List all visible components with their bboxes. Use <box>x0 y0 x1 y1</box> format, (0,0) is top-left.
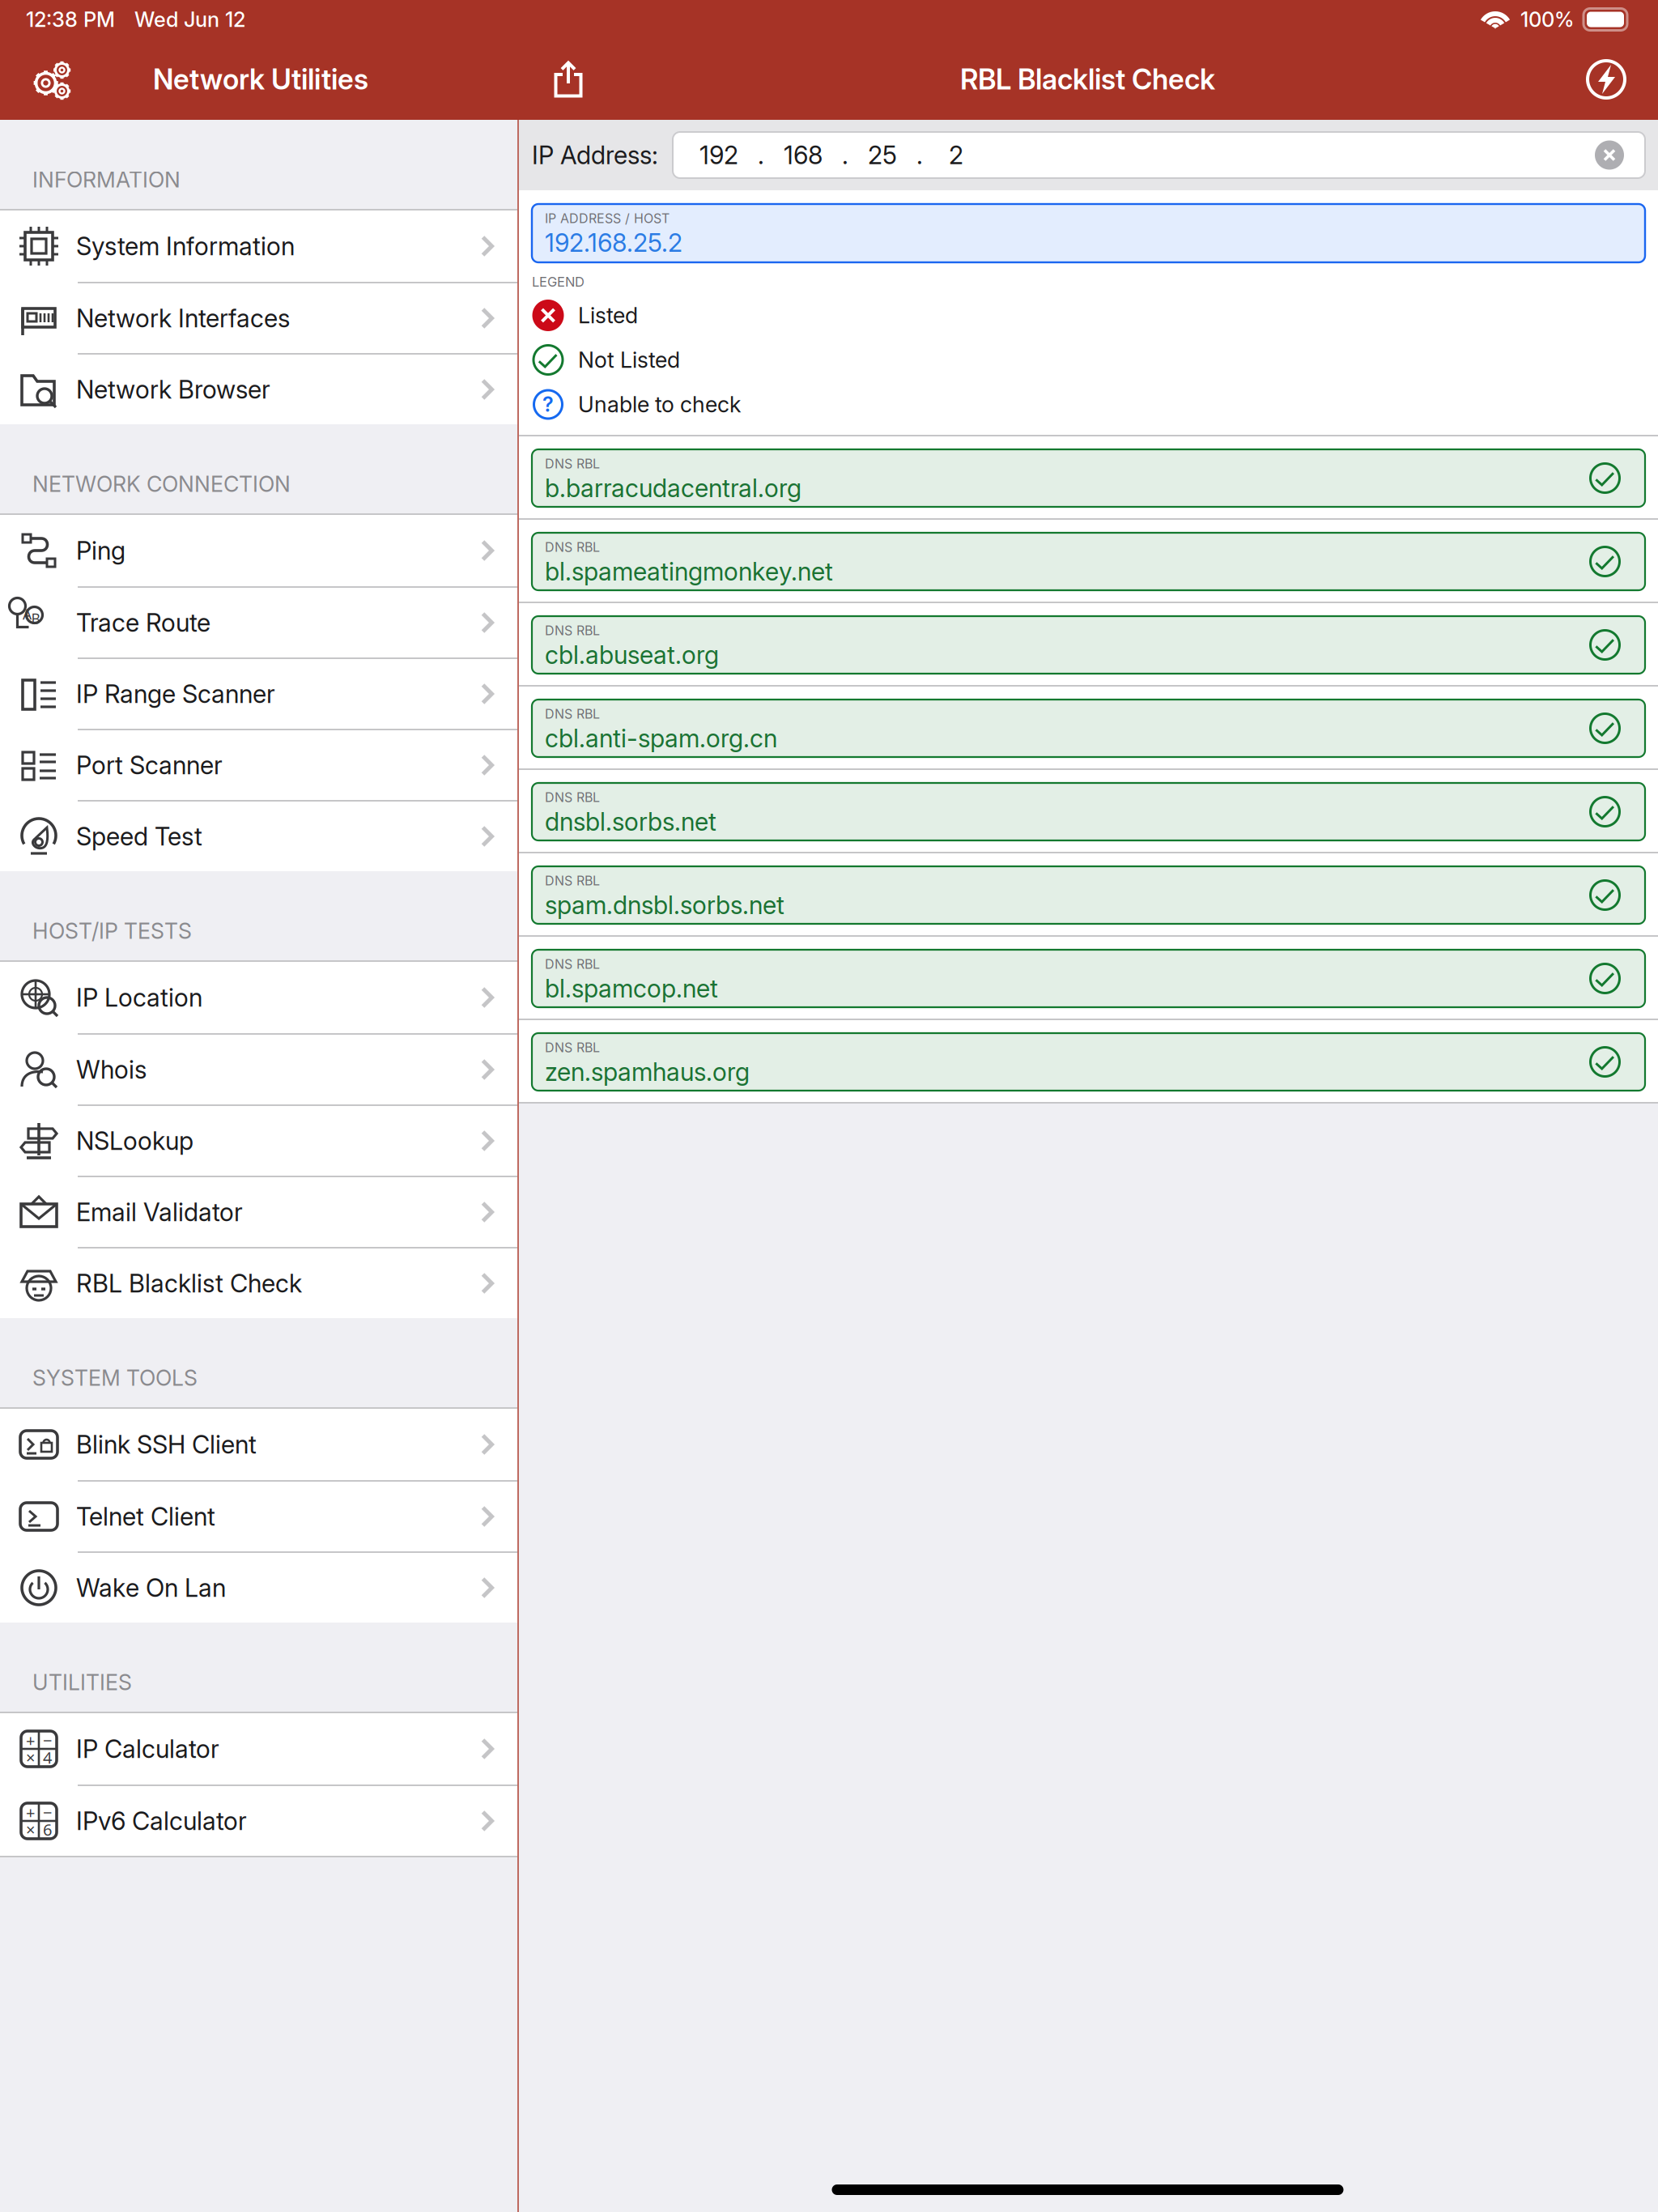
staticText: dnsbl.sorbs.net <box>545 807 716 837</box>
button[interactable]: DNS RBL <box>519 853 1658 937</box>
staticText: RBL Blacklist Check <box>960 62 1215 96</box>
staticText: NETWORK CONNECTION <box>32 471 291 497</box>
staticText: IP Range Scanner <box>76 679 275 709</box>
button[interactable]: Whois <box>0 1033 517 1104</box>
staticText: DNS RBL <box>545 456 600 472</box>
staticText: 192.168.25.2 <box>545 228 682 258</box>
staticText: Trace Route <box>76 608 210 638</box>
staticText: IP Location <box>76 982 202 1012</box>
staticText: Listed <box>578 302 638 329</box>
staticText: Unable to check <box>578 391 741 418</box>
button[interactable]: Blink SSH Client <box>0 1409 517 1480</box>
staticText: UTILITIES <box>32 1669 132 1695</box>
staticText: SYSTEM TOOLS <box>32 1365 198 1391</box>
staticText: bl.spamcop.net <box>545 974 718 1004</box>
staticText: B <box>31 609 40 628</box>
button[interactable]: RBL Blacklist Check <box>0 1247 517 1318</box>
staticText: spam.dnsbl.sorbs.net <box>545 890 784 920</box>
staticText: NSLookup <box>76 1126 193 1156</box>
staticText: × <box>26 1747 35 1768</box>
staticText: DNS RBL <box>545 1040 600 1055</box>
button[interactable]: Port Scanner <box>0 729 517 800</box>
button[interactable]: IP Location <box>0 962 517 1033</box>
staticText: − <box>43 1730 52 1751</box>
staticText: Blink SSH Client <box>76 1429 257 1459</box>
staticText: ? <box>542 392 554 417</box>
staticText: IPv6 Calculator <box>76 1806 247 1836</box>
staticText: LEGEND <box>532 274 585 290</box>
button[interactable]: Telnet Client <box>0 1480 517 1551</box>
staticText: Network Interfaces <box>76 303 290 333</box>
staticText: − <box>43 1802 52 1823</box>
staticText: Wake On Lan <box>76 1573 226 1603</box>
button[interactable]: Network Browser <box>0 353 517 424</box>
button[interactable]: DNS RBL <box>519 770 1658 853</box>
staticText: Ping <box>76 536 125 566</box>
button[interactable]: Speed Test <box>0 800 517 871</box>
staticText: + <box>26 1730 35 1751</box>
staticText: 12:38 PM <box>26 7 115 32</box>
staticText: RBL Blacklist Check <box>76 1268 302 1298</box>
staticText: DNS RBL <box>545 873 600 889</box>
button[interactable]: Network Interfaces <box>0 282 517 353</box>
staticText: cbl.anti-spam.org.cn <box>545 723 777 753</box>
button[interactable]: + <box>0 1713 517 1784</box>
staticText: Not Listed <box>578 347 680 373</box>
staticText: zen.spamhaus.org <box>545 1057 750 1087</box>
staticText: Speed Test <box>76 821 202 851</box>
staticText: System Information <box>76 231 295 261</box>
button[interactable]: A <box>0 586 517 657</box>
button[interactable]: IP Range Scanner <box>0 657 517 729</box>
staticText: A <box>23 605 32 623</box>
staticText: Network Utilities <box>153 62 368 96</box>
staticText: DNS RBL <box>545 623 600 638</box>
button[interactable]: Share <box>517 39 619 120</box>
button[interactable]: DNS RBL <box>519 1020 1658 1104</box>
staticText: DNS RBL <box>545 956 600 972</box>
staticText: Whois <box>76 1055 147 1085</box>
button[interactable]: Run check <box>1554 39 1658 120</box>
staticText: 192 . 168 . 25 . 2 <box>699 140 963 170</box>
button[interactable]: Email Validator <box>0 1176 517 1247</box>
staticText: + <box>26 1802 35 1823</box>
button[interactable]: DNS RBL <box>519 937 1658 1020</box>
staticText: Telnet Client <box>76 1501 215 1531</box>
button[interactable]: DNS RBL <box>519 436 1658 520</box>
button[interactable]: Clear <box>1595 140 1645 170</box>
staticText: Wed Jun 12 <box>134 7 245 32</box>
button[interactable]: DNS RBL <box>519 520 1658 603</box>
staticText: IP Address: <box>532 140 658 170</box>
staticText: × <box>26 1819 35 1840</box>
button[interactable]: DNS RBL <box>519 603 1658 687</box>
button[interactable]: Settings <box>0 39 102 120</box>
staticText: bl.spameatingmonkey.net <box>545 557 833 587</box>
staticText: INFORMATION <box>32 167 181 193</box>
staticText: cbl.abuseat.org <box>545 640 719 670</box>
staticText: Email Validator <box>76 1197 243 1227</box>
button[interactable]: Ping <box>0 515 517 586</box>
staticText: DNS RBL <box>545 789 600 805</box>
button[interactable]: System Information <box>0 211 517 282</box>
button[interactable]: Wake On Lan <box>0 1551 517 1623</box>
staticText: HOST/IP TESTS <box>32 918 192 944</box>
staticText: DNS RBL <box>545 539 600 555</box>
staticText: 4 <box>43 1747 52 1768</box>
staticText: IP Calculator <box>76 1734 219 1764</box>
staticText: DNS RBL <box>545 706 600 722</box>
staticText: 100% <box>1520 7 1574 32</box>
button[interactable]: + <box>0 1784 517 1856</box>
staticText: 6 <box>43 1819 52 1840</box>
button[interactable]: NSLookup <box>0 1104 517 1176</box>
staticText: Port Scanner <box>76 750 223 780</box>
staticText: Network Browser <box>76 374 270 404</box>
button[interactable]: DNS RBL <box>519 687 1658 770</box>
staticText: IP ADDRESS / HOST <box>545 211 670 226</box>
staticText: b.barracudacentral.org <box>545 473 801 503</box>
